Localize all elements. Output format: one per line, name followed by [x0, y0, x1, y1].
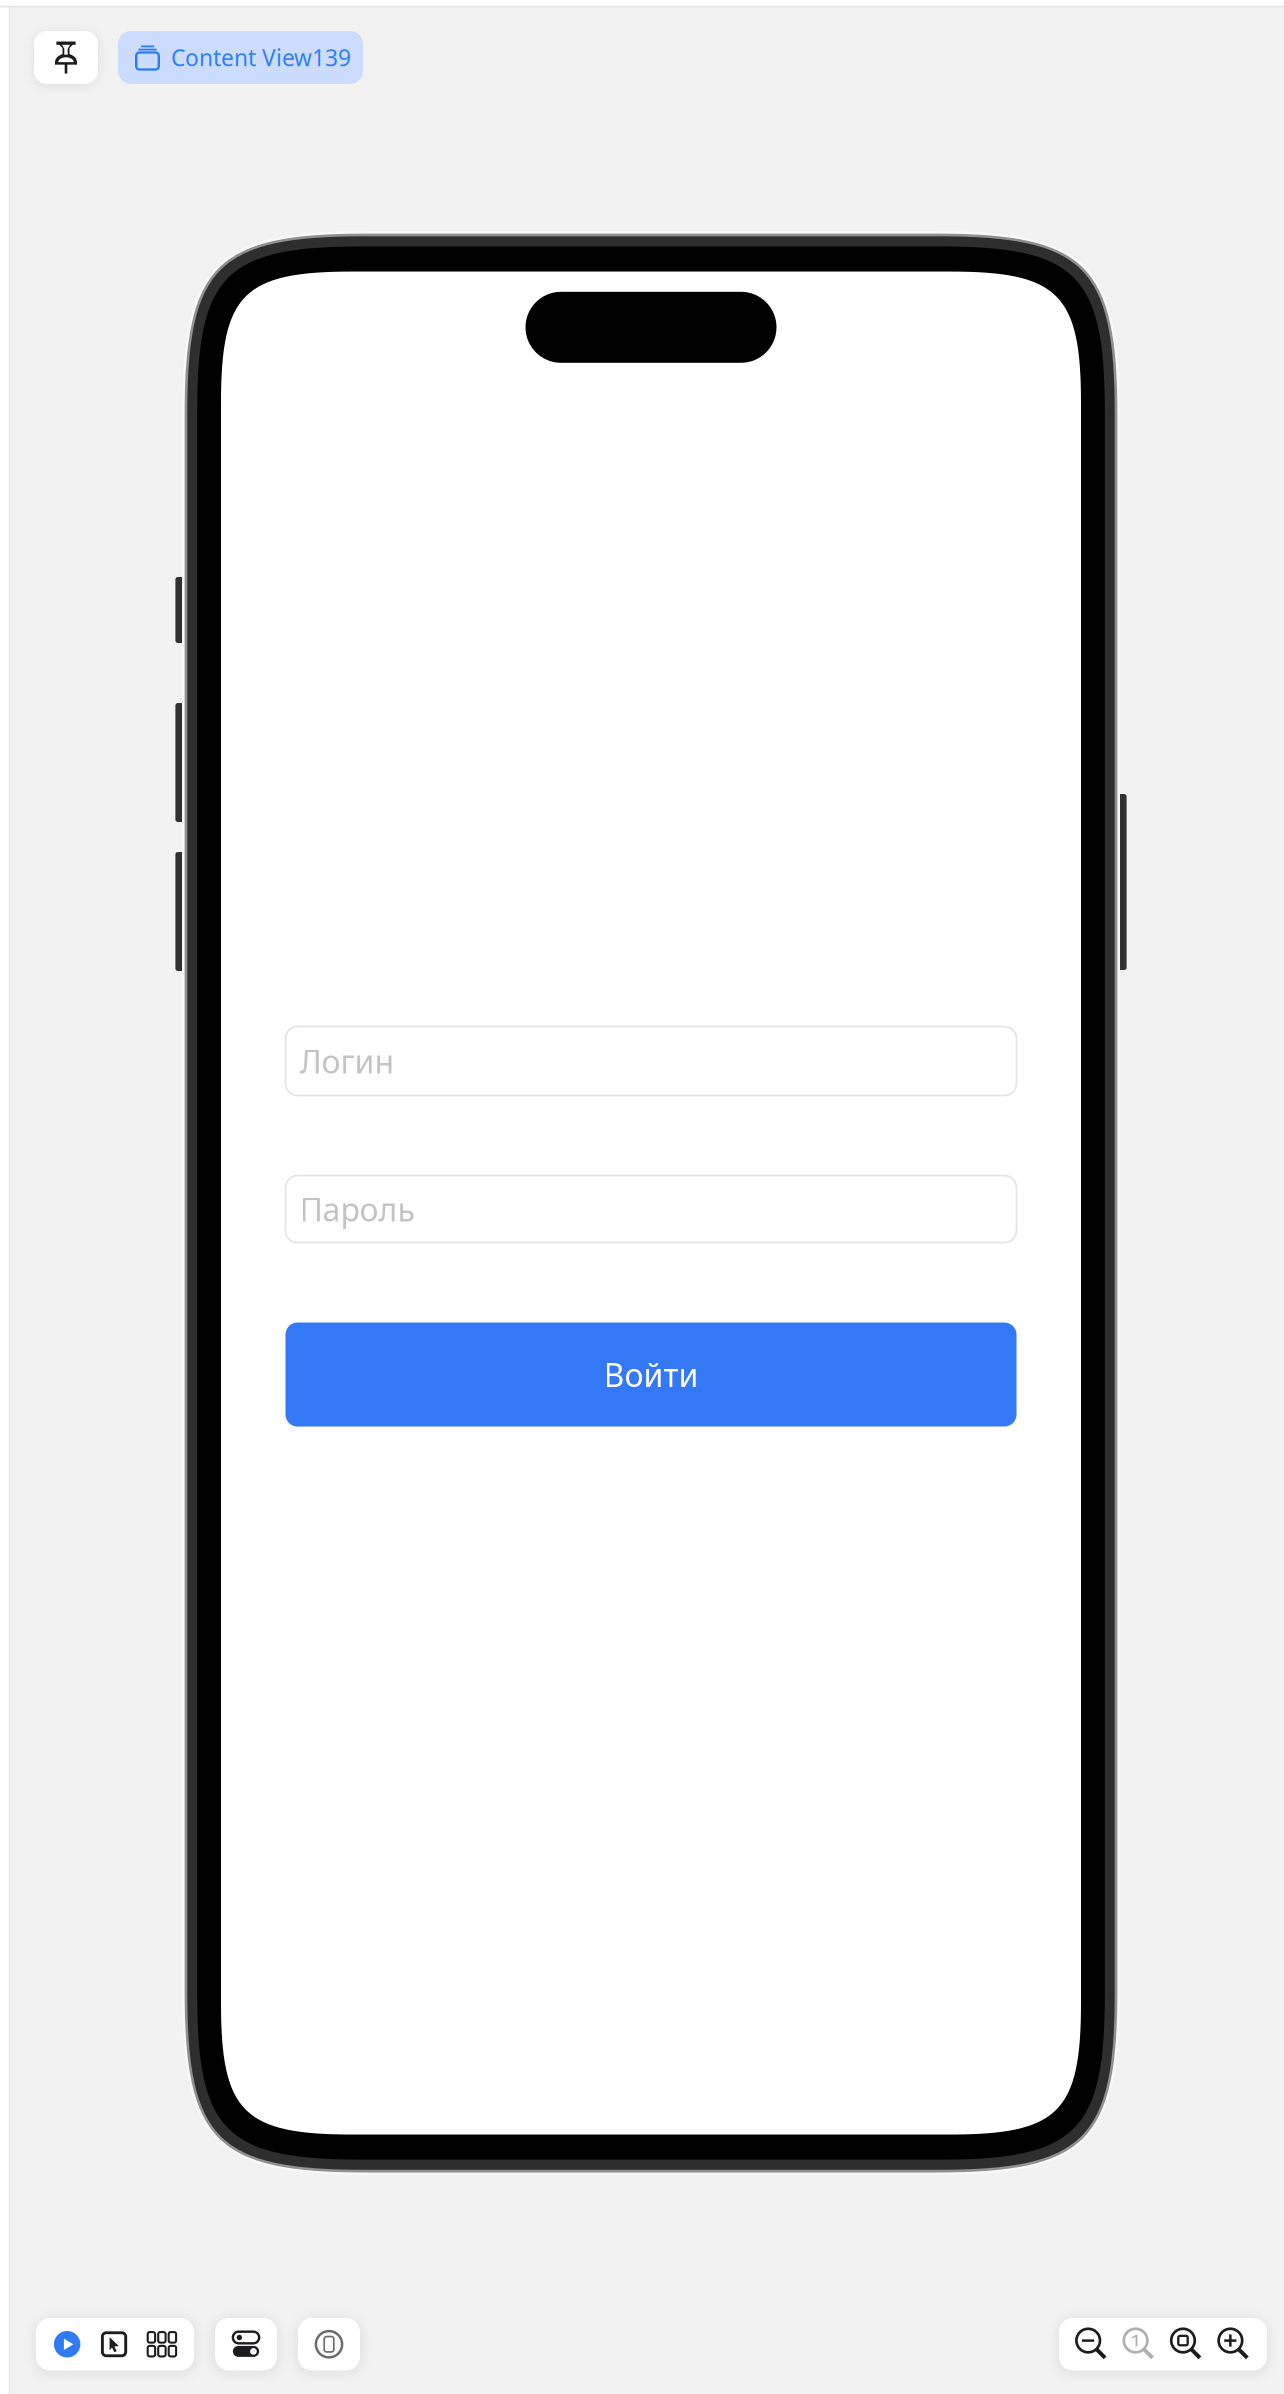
- button[interactable]: Zoom to fit: [1170, 2327, 1204, 2361]
- button[interactable]: Zoom to actual size: [1122, 2327, 1156, 2361]
- button[interactable]: Pin preview: [34, 31, 98, 84]
- button[interactable]: Device settings: [314, 2329, 344, 2359]
- button[interactable]: Zoom out: [1075, 2327, 1109, 2361]
- staticText: Пароль: [299, 1188, 414, 1230]
- staticText: Войти: [603, 1353, 698, 1396]
- button[interactable]: Войти: [285, 1322, 1016, 1426]
- button[interactable]: Run preview: [54, 2331, 80, 2357]
- button[interactable]: Preview variants: [148, 2332, 176, 2356]
- button[interactable]: Zoom in: [1217, 2327, 1251, 2361]
- button[interactable]: Selection tool: [102, 2333, 126, 2356]
- button[interactable]: Content View139: [118, 31, 363, 84]
- button[interactable]: Preview settings: [232, 2332, 260, 2357]
- staticText: Логин: [299, 1040, 394, 1082]
- staticText: Content View139: [171, 42, 351, 72]
